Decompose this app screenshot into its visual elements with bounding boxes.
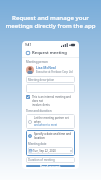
staticText: Time and duration (26, 109, 52, 113)
button[interactable]: This is an internal meeting and does not… (26, 95, 75, 107)
staticText: Lisa McNeal (36, 65, 56, 70)
button[interactable]: Duration of meeting (26, 157, 75, 163)
button[interactable]: Send request (26, 165, 75, 167)
staticText: Duration of meeting (28, 158, 55, 162)
staticText: This is an internal meeting and does not… (32, 95, 75, 107)
button[interactable]: Menu (22, 48, 79, 57)
staticText: Tue, Sep 22, 2020 (33, 149, 56, 153)
staticText: Specify a date and time and location (34, 132, 71, 140)
button[interactable]: Let the meeting partner set when (26, 114, 75, 129)
staticText: 9:41 (25, 43, 32, 47)
button[interactable] (26, 84, 75, 93)
staticText: and where to meet (34, 123, 58, 127)
staticText: Meeting description (28, 78, 55, 82)
staticText: Request meeting (32, 50, 67, 56)
button[interactable]: Lisa McNeal (26, 65, 75, 74)
staticText: Let the meeting partner set when (34, 116, 73, 123)
staticText: Executive at Firebase Corp Ltd (36, 70, 73, 74)
button[interactable]: Specify a date and time and location (26, 130, 75, 156)
staticText: Request and manage your meetings directl… (0, 13, 101, 30)
button[interactable]: Meeting description (26, 76, 75, 83)
button[interactable]: Tue, Sep 22, 2020 (28, 147, 73, 154)
staticText: Meeting date (28, 142, 47, 146)
staticText: Send request (40, 165, 61, 167)
staticText: Meeting person (26, 60, 48, 64)
other: Menu (26, 51, 30, 55)
